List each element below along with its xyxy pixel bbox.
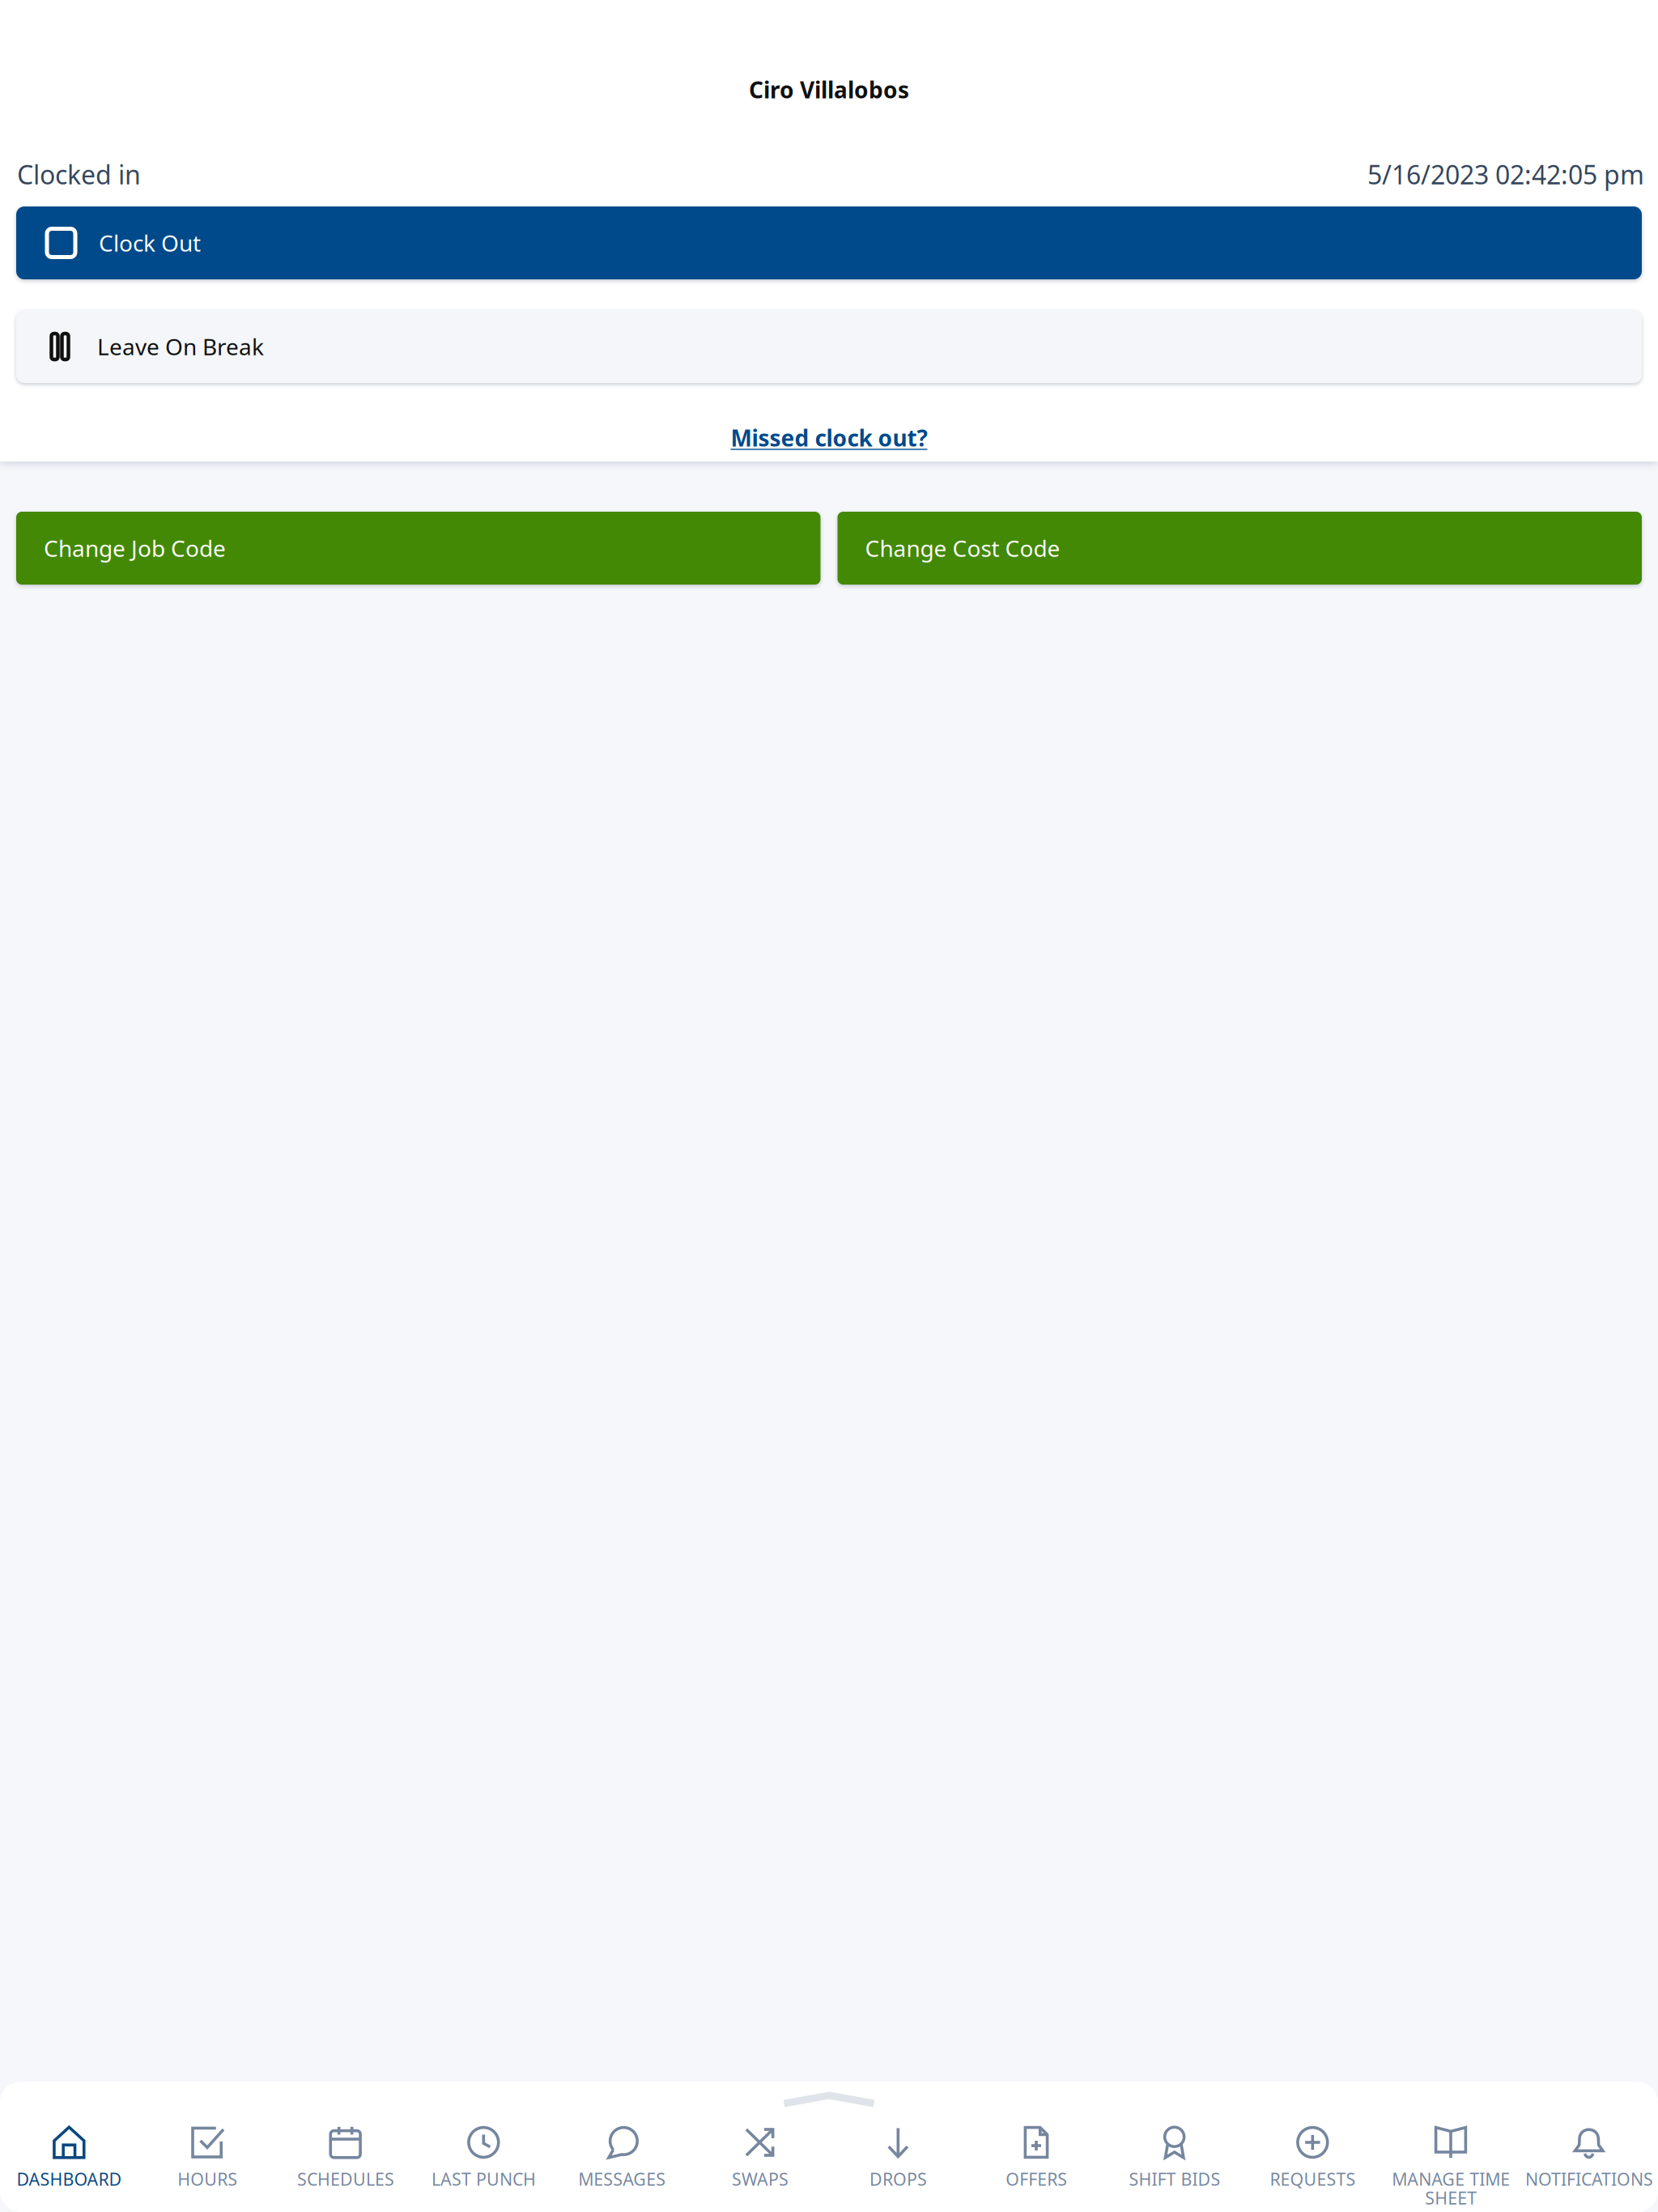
staticText: OFFERS <box>1005 2167 1067 2190</box>
button[interactable]: OFFERS <box>967 2082 1105 2212</box>
staticText: Change Job Code <box>44 533 226 563</box>
button[interactable]: Change Cost Code <box>838 512 1642 585</box>
staticText: 5/16/2023 02:42:05 pm <box>1367 157 1644 191</box>
staticText: SWAPS <box>732 2167 788 2190</box>
staticText: SCHEDULES <box>297 2167 394 2190</box>
button[interactable]: SWAPS <box>691 2082 829 2212</box>
button[interactable]: Missed clock out? <box>0 411 1658 464</box>
staticText: DROPS <box>869 2167 927 2190</box>
staticText: Change Cost Code <box>865 533 1060 563</box>
staticText: MANAGE TIME SHEET <box>1392 2167 1510 2209</box>
staticText: Clocked in <box>17 157 141 191</box>
staticText: Leave On Break <box>97 331 264 362</box>
button[interactable]: LAST PUNCH <box>414 2082 553 2212</box>
button[interactable]: DROPS <box>829 2082 967 2212</box>
button[interactable]: HOURS <box>138 2082 276 2212</box>
staticText: Clock Out <box>99 228 201 258</box>
staticText: Ciro Villalobos <box>749 74 909 105</box>
staticText: MESSAGES <box>578 2167 665 2190</box>
button[interactable]: Leave On Break <box>16 310 1642 383</box>
button[interactable]: Clock Out <box>16 206 1642 279</box>
button[interactable]: DASHBOARD <box>0 2082 138 2212</box>
staticText: Missed clock out? <box>731 423 927 453</box>
staticText: LAST PUNCH <box>431 2167 536 2190</box>
staticText: SHIFT BIDS <box>1129 2167 1220 2190</box>
button[interactable]: NOTIFICATIONS <box>1520 2082 1658 2212</box>
button[interactable]: MESSAGES <box>553 2082 691 2212</box>
button[interactable]: SCHEDULES <box>276 2082 414 2212</box>
staticText: REQUESTS <box>1270 2167 1355 2190</box>
staticText: DASHBOARD <box>16 2167 122 2190</box>
button[interactable]: REQUESTS <box>1243 2082 1382 2212</box>
button[interactable]: Change Job Code <box>16 512 820 585</box>
button[interactable]: SHIFT BIDS <box>1105 2082 1243 2212</box>
staticText: NOTIFICATIONS <box>1525 2167 1653 2190</box>
staticText: HOURS <box>177 2167 237 2190</box>
button[interactable]: MANAGE TIME SHEET <box>1382 2082 1520 2212</box>
